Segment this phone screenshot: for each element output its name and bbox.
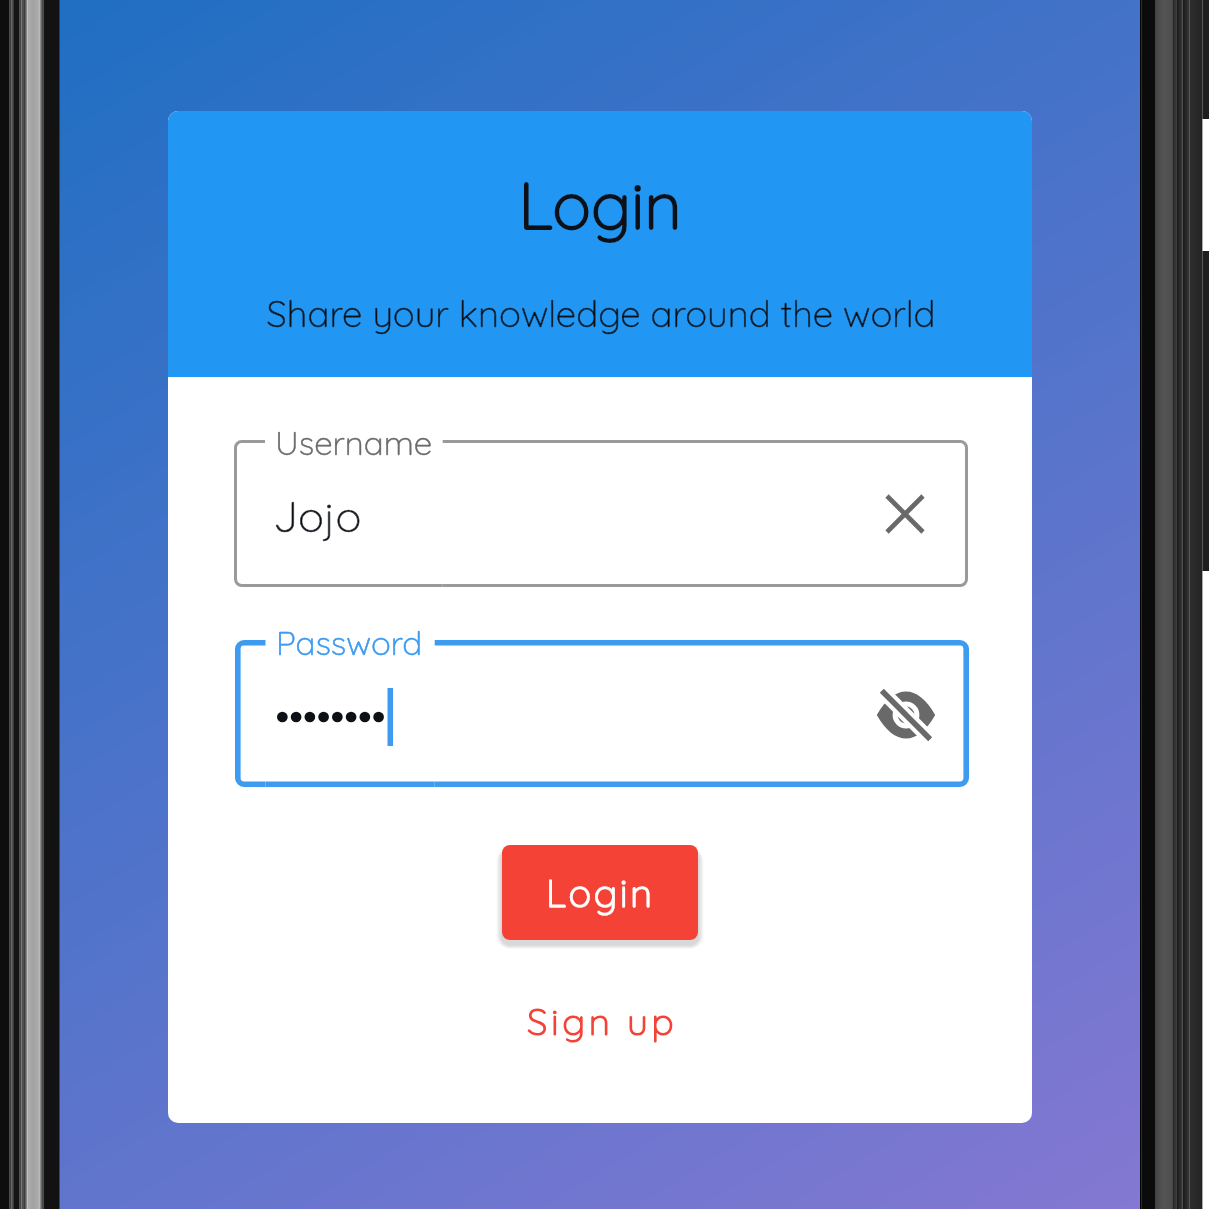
staticText: Username — [275, 422, 433, 464]
staticText: Login — [150, 164, 1050, 245]
staticText: Jojo — [273, 489, 362, 543]
button[interactable]: Clear username — [869, 478, 941, 550]
button[interactable]: Sign up — [502, 986, 702, 1056]
staticText: Sign up — [527, 998, 678, 1044]
staticText: Password — [276, 622, 423, 664]
staticText: Share your knowledge around the world — [151, 290, 1051, 336]
button[interactable]: Toggle password visibility — [866, 675, 946, 755]
staticText: Share your knowledge around the world — [151, 290, 1051, 336]
staticText: Password — [276, 622, 423, 664]
staticText: Jojo — [273, 489, 362, 543]
staticText: Login — [546, 869, 655, 917]
button[interactable]: Login — [502, 845, 698, 940]
staticText: Username — [275, 422, 433, 464]
